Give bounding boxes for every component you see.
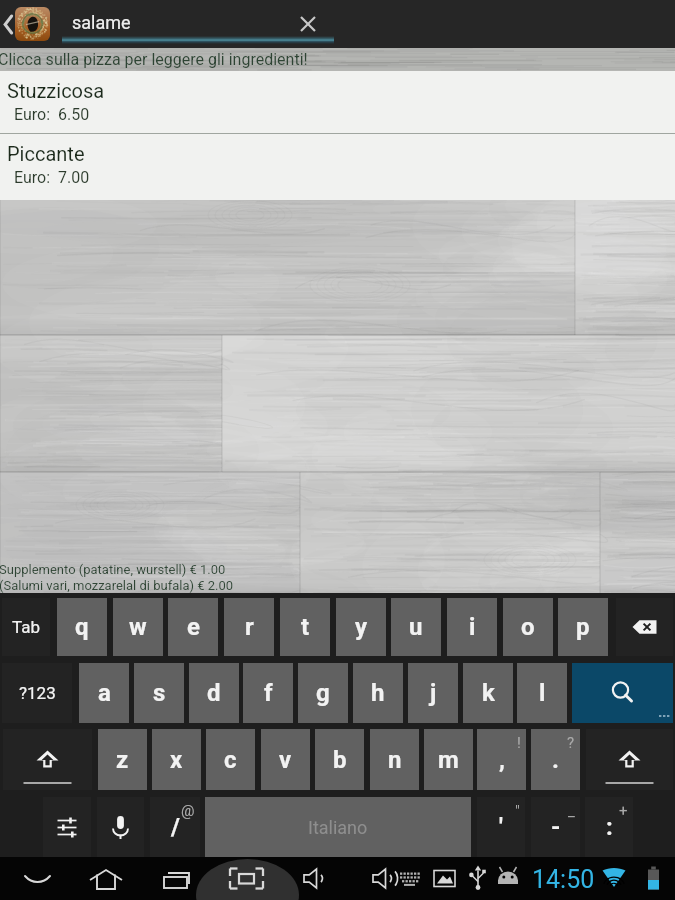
button[interactable]: Piccante xyxy=(0,134,675,200)
staticText: Supplemento (patatine, wurstell) € 1.00 xyxy=(0,562,226,577)
button[interactable]: n xyxy=(370,729,419,790)
staticText: j xyxy=(430,679,437,707)
staticText: Italiano xyxy=(308,817,368,838)
button[interactable]: Back xyxy=(0,0,16,48)
button[interactable]: ' xyxy=(477,797,525,857)
button[interactable]: b xyxy=(315,729,364,790)
button[interactable]: t xyxy=(280,598,330,656)
button[interactable]: g xyxy=(298,663,348,723)
staticText: Clicca sulla pizza per leggere gli ingre… xyxy=(0,50,308,69)
staticText: ! xyxy=(517,734,521,752)
staticText: , xyxy=(499,746,505,774)
staticText: p xyxy=(576,613,590,641)
button[interactable]: j xyxy=(408,663,458,723)
staticText: @ xyxy=(181,802,195,820)
staticText: (Salumi vari, mozzarelal di bufala) € 2.… xyxy=(0,578,234,593)
staticText: a xyxy=(98,679,111,707)
button[interactable]: App logo xyxy=(15,7,50,41)
staticText: q xyxy=(75,613,89,641)
staticText: " xyxy=(515,802,520,820)
staticText: l xyxy=(539,679,546,707)
button[interactable]: y xyxy=(336,598,386,656)
button[interactable]: v xyxy=(261,729,310,790)
staticText: ' xyxy=(499,813,503,841)
button[interactable]: Backspace xyxy=(616,598,673,656)
staticText: Euro: 6.50 xyxy=(14,105,90,124)
staticText: Euro: 7.00 xyxy=(14,168,90,187)
button[interactable]: f xyxy=(243,663,293,723)
button[interactable]: Home xyxy=(78,857,138,900)
staticText: g xyxy=(316,679,330,707)
staticText: : xyxy=(606,813,613,841)
button[interactable]: Clear search xyxy=(294,7,322,41)
staticText: h xyxy=(371,679,385,707)
button[interactable]: Italiano xyxy=(205,797,471,857)
button[interactable]: Keyboard settings xyxy=(43,797,91,857)
staticText: Stuzzicosa xyxy=(7,79,105,102)
staticText: n xyxy=(388,746,402,774)
staticText: f xyxy=(264,679,273,707)
staticText: - xyxy=(551,813,561,841)
staticText: . xyxy=(552,746,559,774)
button[interactable]: e xyxy=(168,598,218,656)
button[interactable]: p xyxy=(558,598,608,656)
button[interactable]: Recent apps xyxy=(146,857,204,900)
staticText: Piccante xyxy=(7,142,85,165)
button[interactable]: o xyxy=(503,598,553,656)
button[interactable]: , xyxy=(477,729,526,790)
button[interactable]: : xyxy=(585,797,633,857)
staticText: Tab xyxy=(12,617,40,637)
button[interactable]: ?123 xyxy=(2,663,72,723)
staticText: b xyxy=(333,746,347,774)
staticText: s xyxy=(153,679,166,707)
staticText: ? xyxy=(567,734,575,752)
staticText: m xyxy=(438,746,459,774)
button[interactable]: l xyxy=(517,663,567,723)
staticText: 14:50 xyxy=(532,865,595,894)
button[interactable]: h xyxy=(353,663,403,723)
staticText: i xyxy=(469,613,476,641)
button[interactable]: x xyxy=(152,729,201,790)
button[interactable]: a xyxy=(79,663,129,723)
button[interactable]: s xyxy=(134,663,184,723)
button[interactable]: u xyxy=(391,598,441,656)
button[interactable]: Tab xyxy=(2,598,50,656)
staticText: d xyxy=(207,679,221,707)
staticText: + xyxy=(619,802,628,820)
button[interactable]: z xyxy=(98,729,147,790)
staticText: / xyxy=(171,813,180,841)
staticText: z xyxy=(116,746,129,774)
staticText: _ xyxy=(568,802,575,820)
button[interactable]: Voice input xyxy=(97,797,144,857)
staticText: x xyxy=(170,746,183,774)
button[interactable]: q xyxy=(57,598,107,656)
staticText: r xyxy=(245,613,254,641)
button[interactable]: Shift xyxy=(586,729,673,790)
button[interactable]: d xyxy=(189,663,239,723)
button[interactable]: Stuzzicosa xyxy=(0,71,675,134)
staticText: u xyxy=(409,613,423,641)
button[interactable]: c xyxy=(206,729,255,790)
staticText: e xyxy=(187,613,200,641)
button[interactable]: i xyxy=(447,598,497,656)
staticText: o xyxy=(521,613,535,641)
staticText: salame xyxy=(72,12,131,33)
staticText: w xyxy=(129,613,147,641)
button[interactable]: Hide keyboard xyxy=(10,857,70,900)
button[interactable]: . xyxy=(531,729,580,790)
staticText: v xyxy=(279,746,292,774)
staticText: y xyxy=(355,613,368,641)
staticText: ?123 xyxy=(19,683,56,703)
staticText: t xyxy=(301,613,310,641)
button[interactable]: w xyxy=(113,598,163,656)
button[interactable]: - xyxy=(531,797,580,857)
button[interactable]: Screenshot xyxy=(220,857,276,900)
staticText: c xyxy=(224,746,237,774)
button[interactable]: Search xyxy=(572,663,673,723)
button[interactable]: m xyxy=(424,729,473,790)
button[interactable]: r xyxy=(224,598,274,656)
button[interactable]: / xyxy=(150,797,200,857)
button[interactable]: Shift xyxy=(3,729,92,790)
button[interactable]: k xyxy=(463,663,513,723)
staticText: k xyxy=(482,679,495,707)
